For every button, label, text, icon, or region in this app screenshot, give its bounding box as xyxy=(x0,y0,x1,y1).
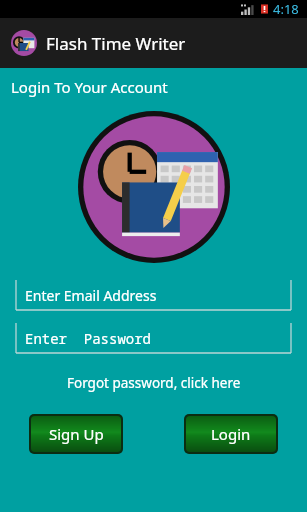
staticText: Flash Time Writer xyxy=(46,32,186,55)
staticText: Sign Up xyxy=(49,424,104,444)
button[interactable]: Forgot password, click here xyxy=(0,371,307,395)
staticText: Enter Email Address xyxy=(25,286,157,305)
button[interactable]: Enter Password xyxy=(16,323,291,353)
button[interactable]: Sign Up xyxy=(31,416,121,452)
staticText: 4:18 xyxy=(273,0,299,18)
staticText: Login To Your Account xyxy=(11,77,168,97)
staticText: Login xyxy=(211,424,251,444)
staticText: Enter Password xyxy=(25,329,151,348)
button[interactable]: Enter Email Address xyxy=(16,280,291,310)
staticText: Forgot password, click here xyxy=(67,374,241,392)
other: App icon xyxy=(11,30,37,56)
button[interactable]: Login xyxy=(186,416,276,452)
